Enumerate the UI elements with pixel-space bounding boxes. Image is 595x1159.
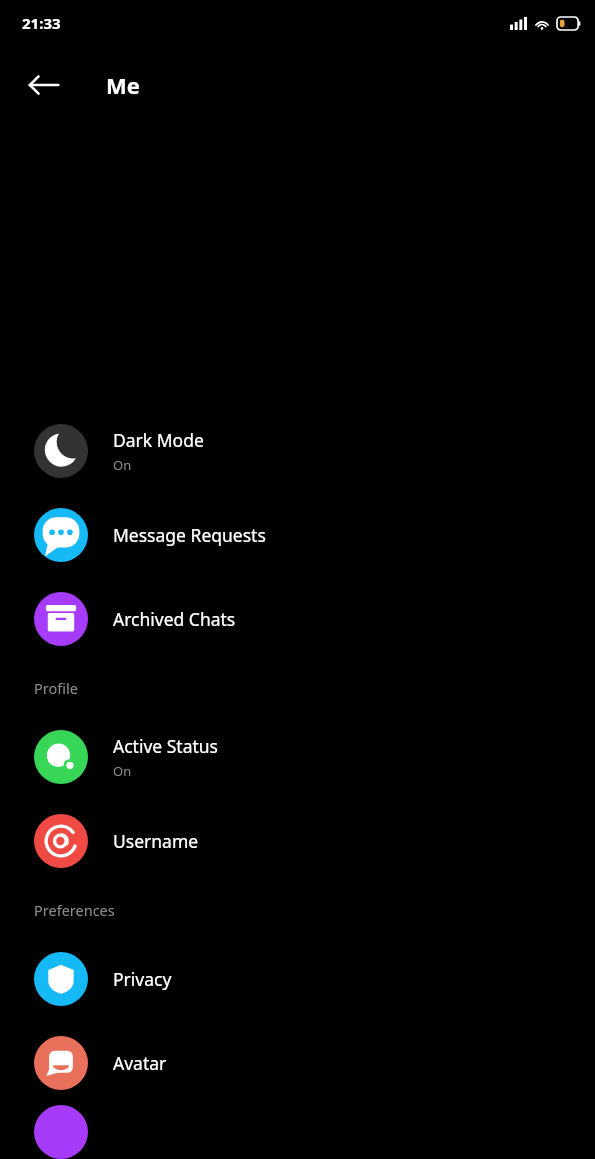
staticText: Profile (34, 678, 78, 698)
button[interactable]: Active Status (0, 715, 595, 799)
button[interactable]: Avatar (0, 1021, 595, 1105)
staticText: Message Requests (113, 523, 266, 547)
staticText: On (113, 762, 132, 780)
button[interactable] (0, 1105, 595, 1159)
staticText: Avatar (113, 1051, 167, 1075)
staticText: 21:33 (22, 13, 61, 33)
staticText: Username (113, 829, 199, 853)
staticText: Active Status (113, 734, 218, 758)
button[interactable]: Username (0, 799, 595, 883)
staticText: On (113, 456, 132, 474)
button[interactable]: Back (22, 63, 66, 107)
staticText: Privacy (113, 967, 172, 991)
button[interactable]: Privacy (0, 937, 595, 1021)
button[interactable]: Message Requests (0, 493, 595, 577)
staticText: Dark Mode (113, 428, 204, 452)
staticText: Me (106, 70, 140, 100)
staticText: Preferences (34, 900, 115, 920)
button[interactable]: Archived Chats (0, 577, 595, 661)
staticText: Archived Chats (113, 607, 236, 631)
button[interactable]: Dark Mode (0, 409, 595, 493)
